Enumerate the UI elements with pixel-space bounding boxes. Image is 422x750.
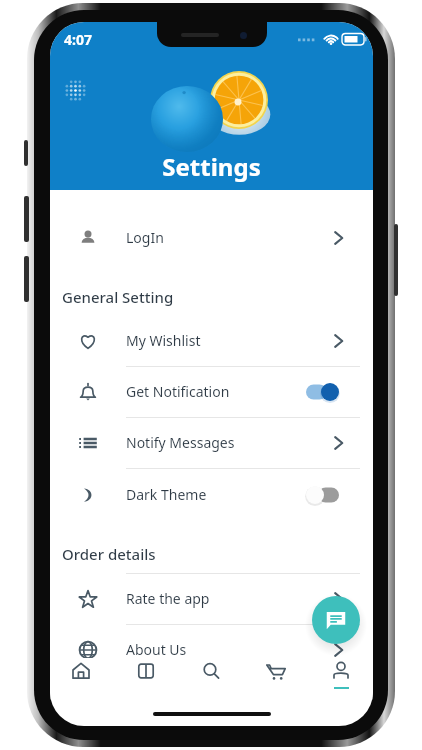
button[interactable]: book: [121, 658, 171, 698]
staticText: Get Notification: [126, 382, 230, 401]
staticText: Order details: [62, 544, 156, 564]
staticText: LogIn: [126, 228, 164, 247]
button[interactable]: Rate the app: [50, 576, 373, 621]
button[interactable]: LogIn: [50, 215, 373, 260]
staticText: 4:07: [64, 30, 92, 49]
button[interactable]: Notify Messages: [50, 420, 373, 465]
button[interactable]: Get Notification: [50, 369, 373, 414]
button[interactable]: search: [186, 658, 236, 698]
staticText: Dark Theme: [126, 485, 207, 504]
button[interactable]: profile: [316, 658, 366, 698]
button[interactable]: Chat: [312, 596, 360, 644]
staticText: My Wishlist: [126, 331, 201, 350]
button[interactable]: Menu: [57, 72, 93, 108]
staticText: About Us: [126, 640, 187, 659]
button[interactable]: My Wishlist: [50, 318, 373, 363]
staticText: Settings: [50, 150, 373, 183]
staticText: Rate the app: [126, 589, 210, 608]
button[interactable]: home: [56, 658, 106, 698]
button[interactable]: About Us: [50, 627, 373, 672]
staticText: General Setting: [62, 287, 174, 307]
button[interactable]: cart: [251, 658, 301, 698]
button[interactable]: Dark Theme: [50, 472, 373, 517]
staticText: Notify Messages: [126, 433, 235, 452]
